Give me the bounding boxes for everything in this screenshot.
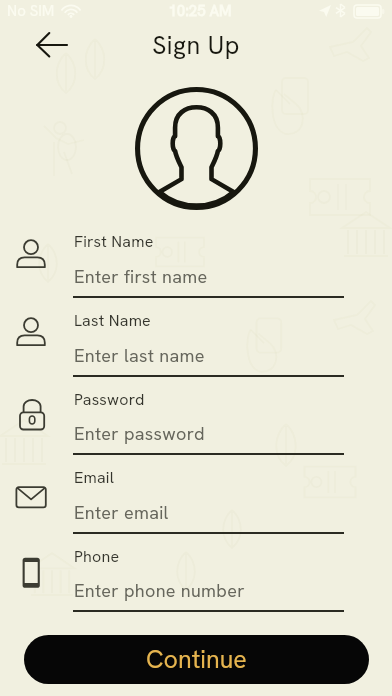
- staticText: Enter phone number: [74, 579, 245, 602]
- staticText: Enter last name: [74, 344, 205, 367]
- staticText: Sign Up: [0, 29, 392, 62]
- button[interactable]: Back: [25, 21, 73, 69]
- staticText: Continue: [146, 643, 247, 676]
- staticText: Enter first name: [74, 265, 208, 288]
- staticText: Password: [74, 389, 145, 410]
- button[interactable]: Continue: [24, 635, 369, 684]
- staticText: Email: [74, 467, 115, 488]
- staticText: 10:25 AM: [4, 1, 392, 21]
- other: Password: [14, 394, 48, 428]
- other: Phone: [14, 551, 48, 585]
- other: First Name: [14, 237, 48, 271]
- other: Last Name: [14, 315, 48, 349]
- staticText: Last Name: [74, 310, 151, 331]
- staticText: First Name: [74, 231, 154, 252]
- staticText: No SIM: [7, 1, 55, 21]
- staticText: Phone: [74, 546, 120, 567]
- staticText: Enter password: [74, 422, 205, 445]
- staticText: Enter email: [74, 501, 169, 524]
- other: Email: [14, 473, 48, 507]
